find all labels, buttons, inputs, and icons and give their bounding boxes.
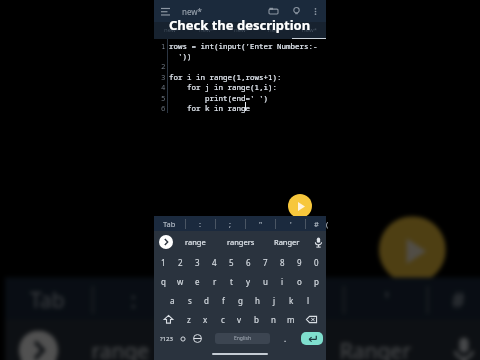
button[interactable]: q bbox=[155, 272, 172, 291]
button[interactable]: . bbox=[270, 329, 301, 348]
button[interactable]: l bbox=[300, 291, 317, 310]
staticText: for i in range(1,rows+1): bbox=[169, 72, 282, 82]
button[interactable]: u bbox=[257, 272, 274, 291]
staticText: ?123 bbox=[160, 335, 173, 343]
button[interactable]: Shift bbox=[156, 310, 180, 329]
button[interactable]: s bbox=[181, 291, 198, 310]
staticText: q bbox=[161, 276, 166, 287]
button[interactable]: i bbox=[274, 272, 291, 291]
button[interactable]: Change language bbox=[190, 329, 205, 348]
staticText: k bbox=[289, 295, 294, 306]
staticText: 2 bbox=[178, 257, 183, 268]
staticText: 9 bbox=[297, 257, 302, 268]
button[interactable]: k bbox=[283, 291, 300, 310]
button[interactable]: t bbox=[223, 272, 240, 291]
button[interactable]: Voice input bbox=[310, 231, 326, 253]
button[interactable]: 8 bbox=[274, 253, 291, 272]
button[interactable]: c bbox=[214, 310, 231, 329]
button[interactable]: new* bbox=[292, 22, 326, 39]
button[interactable]: new* bbox=[189, 22, 224, 39]
button[interactable]: 5 bbox=[223, 253, 240, 272]
button[interactable]: Tab bbox=[154, 216, 185, 231]
button[interactable]: ' bbox=[276, 216, 305, 231]
button[interactable]: range bbox=[173, 231, 218, 253]
staticText: 4 bbox=[212, 257, 217, 268]
button[interactable]: # bbox=[429, 278, 480, 319]
button[interactable]: range bbox=[58, 319, 184, 360]
button[interactable]: b bbox=[248, 310, 265, 329]
button[interactable]: English bbox=[215, 333, 270, 344]
button[interactable]: Backspace bbox=[299, 310, 324, 329]
staticText: 3 bbox=[195, 257, 200, 268]
button[interactable]: Open file bbox=[267, 5, 279, 17]
staticText: Ranger bbox=[340, 336, 412, 360]
staticText: ')) bbox=[169, 51, 192, 61]
button[interactable]: 9 bbox=[291, 253, 308, 272]
button[interactable]: 6 bbox=[240, 253, 257, 272]
button[interactable]: Hints bbox=[290, 5, 302, 17]
button[interactable]: Run code bbox=[379, 216, 446, 283]
staticText: Tab bbox=[30, 286, 66, 314]
staticText: y bbox=[246, 276, 251, 287]
button[interactable]: h bbox=[249, 291, 266, 310]
button[interactable]: ; bbox=[216, 216, 245, 231]
button[interactable]: rangers bbox=[218, 231, 264, 253]
button[interactable]: More suggestions bbox=[19, 331, 58, 360]
button[interactable]: w bbox=[172, 272, 189, 291]
button[interactable]: o bbox=[291, 272, 308, 291]
button[interactable]: Ranger bbox=[264, 231, 310, 253]
button[interactable]: ?123 bbox=[157, 329, 175, 348]
button[interactable]: Menu bbox=[159, 5, 171, 17]
staticText: s bbox=[188, 295, 192, 306]
button[interactable]: 0 bbox=[308, 253, 325, 272]
button[interactable]: e bbox=[189, 272, 206, 291]
button[interactable]: Voice input bbox=[440, 319, 480, 360]
staticText: f bbox=[222, 295, 225, 306]
button[interactable]: " bbox=[246, 216, 275, 231]
button[interactable]: z bbox=[180, 310, 197, 329]
button[interactable]: j bbox=[266, 291, 283, 310]
staticText: : bbox=[199, 219, 202, 229]
button[interactable]: Run code bbox=[288, 194, 312, 218]
button[interactable]: new* bbox=[224, 22, 258, 39]
button[interactable]: 7 bbox=[257, 253, 274, 272]
button[interactable]: : bbox=[94, 278, 175, 319]
button[interactable]: v bbox=[231, 310, 248, 329]
button[interactable]: More options bbox=[310, 6, 321, 17]
button[interactable]: n bbox=[265, 310, 282, 329]
button[interactable]: " bbox=[262, 278, 343, 319]
button[interactable]: : bbox=[186, 216, 215, 231]
button[interactable]: More suggestions bbox=[159, 235, 173, 249]
staticText: Check the description bbox=[169, 16, 311, 34]
staticText: g bbox=[238, 295, 243, 306]
staticText: for k in range bbox=[169, 103, 250, 113]
button[interactable]: rangers bbox=[184, 319, 312, 360]
button[interactable]: 4 bbox=[206, 253, 223, 272]
button[interactable]: y bbox=[240, 272, 257, 291]
button[interactable]: f bbox=[215, 291, 232, 310]
staticText: for j in range(1,i): bbox=[169, 82, 277, 92]
button[interactable]: new* bbox=[154, 22, 189, 39]
staticText: Ranger bbox=[274, 237, 300, 247]
button[interactable]: g bbox=[232, 291, 249, 310]
button[interactable]: r bbox=[206, 272, 223, 291]
button[interactable]: x bbox=[197, 310, 214, 329]
button[interactable]: a bbox=[163, 291, 181, 310]
staticText: 3 bbox=[161, 72, 166, 82]
button[interactable]: p bbox=[308, 272, 325, 291]
button[interactable]: m bbox=[282, 310, 299, 329]
button[interactable]: Enter bbox=[301, 332, 323, 345]
button[interactable]: Ranger bbox=[312, 319, 440, 360]
staticText: rows = int(input('Enter Numbers:- bbox=[169, 41, 318, 51]
button[interactable]: 3 bbox=[189, 253, 206, 272]
button[interactable]: d bbox=[198, 291, 215, 310]
button[interactable]: # bbox=[306, 216, 326, 231]
button[interactable]: ; bbox=[178, 278, 259, 319]
button[interactable]: Settings bbox=[175, 329, 190, 348]
button[interactable]: 1 bbox=[155, 253, 172, 272]
button[interactable]: 2 bbox=[172, 253, 189, 272]
button[interactable]: Tab bbox=[5, 278, 91, 319]
button[interactable]: new* bbox=[258, 22, 292, 39]
